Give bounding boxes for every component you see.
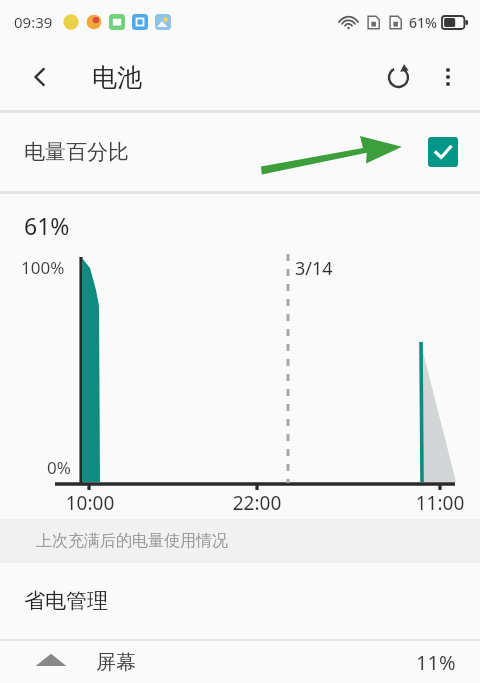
staticText: 100% (21, 256, 65, 279)
button[interactable]: More options (424, 53, 472, 101)
staticText: 09:39 (14, 12, 53, 32)
button[interactable]: 屏幕 (0, 641, 480, 683)
button[interactable]: Back (14, 51, 66, 103)
staticText: 22:00 (217, 490, 297, 516)
staticText: 电池 (92, 62, 142, 93)
button[interactable]: 省电管理 (0, 563, 480, 639)
staticText: 省电管理 (24, 588, 108, 614)
staticText: 电量百分比 (24, 139, 129, 165)
staticText: 上次充满后的电量使用情况 (36, 531, 228, 551)
staticText: 10:00 (50, 490, 130, 516)
staticText: 屏幕 (96, 650, 136, 675)
staticText: 11% (416, 649, 456, 676)
button[interactable]: 电量百分比 (0, 113, 480, 191)
staticText: 61% (24, 210, 70, 241)
staticText: 0% (47, 456, 71, 479)
staticText: 3/14 (295, 256, 333, 281)
staticText: 11:00 (400, 490, 480, 516)
button[interactable]: Refresh (372, 51, 424, 103)
staticText: 61% (409, 13, 437, 32)
